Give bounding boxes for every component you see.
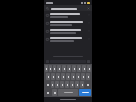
button[interactable]: Shift [45,81,50,88]
button[interactable]: Key [80,81,84,88]
button[interactable]: Key [62,65,66,72]
button[interactable]: Key [45,65,48,72]
button[interactable]: Search [44,5,92,11]
button[interactable]: Key [61,73,65,80]
button[interactable]: Key [66,73,70,80]
button[interactable]: Key [82,65,86,72]
button[interactable]: Key [70,81,74,88]
button[interactable]: Key [71,73,75,80]
button[interactable]: Key [56,73,60,80]
button[interactable]: Key [67,65,71,72]
button[interactable]: Key [46,73,50,80]
button[interactable]: Key [49,65,52,72]
button[interactable]: Key [76,73,80,80]
other: Conversation [46,14,49,17]
other: Conversation [46,22,49,25]
button[interactable]: Key [65,81,69,88]
button[interactable]: Key [51,81,54,88]
button[interactable]: Backspace [85,81,91,88]
button[interactable]: Key [87,65,91,72]
button[interactable]: Key [53,65,56,72]
button[interactable]: Conversation [44,19,92,27]
button[interactable]: Key [81,73,85,80]
button[interactable]: Key [51,73,55,80]
button[interactable]: Conversation [44,27,92,35]
button[interactable]: Key [55,81,59,88]
button[interactable]: Key [57,65,61,72]
button[interactable]: Key [75,81,79,88]
button[interactable]: Conversation [44,11,92,19]
button[interactable]: Conversation [44,35,92,43]
other: Search [46,7,49,10]
other: Clear [87,7,90,10]
other: Conversation [46,38,49,41]
button[interactable]: Emoji [52,89,57,96]
button[interactable]: Key [72,65,76,72]
button[interactable]: Key [86,73,90,80]
button[interactable]: Search [79,89,91,96]
button[interactable]: Space [58,89,78,96]
button[interactable]: Symbols [45,89,51,96]
button[interactable]: Key [60,81,64,88]
other: Conversation [46,30,49,33]
button[interactable]: Key [77,65,81,72]
